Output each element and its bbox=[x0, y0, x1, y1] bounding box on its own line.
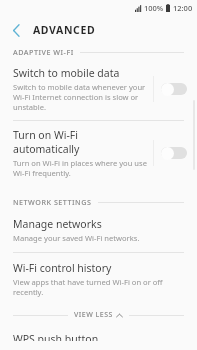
staticText: Manage networks bbox=[13, 217, 102, 231]
button[interactable]: Turn on Wi-Fi automatically bbox=[0, 121, 197, 186]
staticText: 100% bbox=[144, 3, 164, 13]
staticText: WPS push button bbox=[13, 332, 99, 341]
button[interactable]: Back bbox=[5, 19, 27, 41]
staticText: Turn on Wi-Fi in places where you use Wi… bbox=[13, 158, 147, 178]
button[interactable]: VIEW LESS bbox=[0, 306, 197, 324]
staticText: NETWORK SETTINGS bbox=[13, 197, 92, 207]
staticText: Wi-Fi control history bbox=[13, 261, 112, 275]
button[interactable]: Manage networks bbox=[0, 209, 197, 252]
button[interactable]: Toggle bbox=[161, 146, 187, 160]
button[interactable]: Switch to mobile data bbox=[0, 59, 197, 120]
staticText: Switch to mobile data bbox=[13, 66, 120, 80]
button[interactable]: Toggle bbox=[161, 82, 187, 96]
staticText: VIEW LESS bbox=[74, 310, 113, 320]
button[interactable]: Wi-Fi control history bbox=[0, 253, 197, 306]
staticText: 12:00 bbox=[173, 3, 193, 13]
staticText: Manage your saved Wi-Fi networks. bbox=[13, 233, 140, 243]
staticText: Switch to mobile data whenever your Wi-F… bbox=[13, 82, 147, 112]
staticText: ADAPTIVE WI-FI bbox=[13, 47, 74, 57]
button[interactable]: WPS push button bbox=[0, 324, 197, 350]
staticText: Turn on Wi-Fi automatically bbox=[13, 128, 147, 156]
staticText: View apps that have turned Wi-Fi on or o… bbox=[13, 277, 184, 297]
staticText: ADVANCED bbox=[33, 23, 96, 37]
